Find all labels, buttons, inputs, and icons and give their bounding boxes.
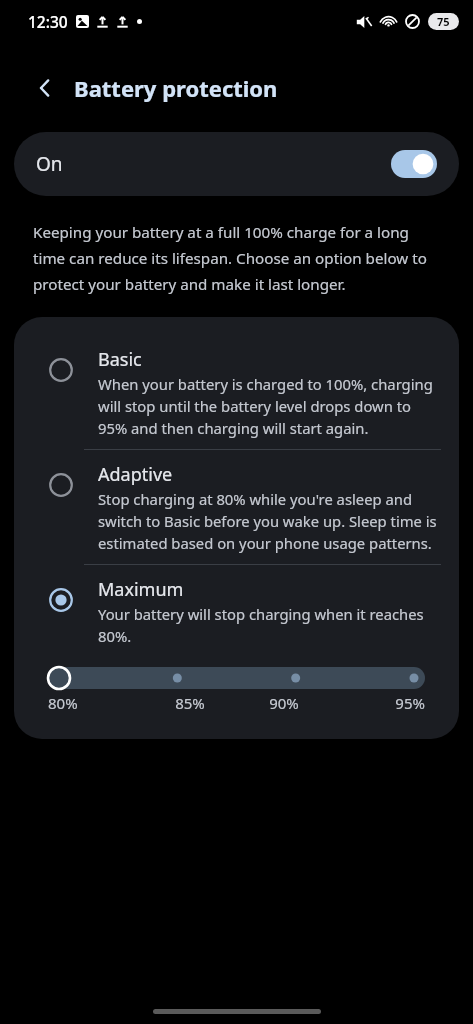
- staticText: 75: [437, 14, 450, 29]
- staticText: 85%: [143, 693, 237, 713]
- staticText: When your battery is charged to 100%, ch…: [98, 374, 441, 439]
- button[interactable]: Basic: [14, 317, 459, 449]
- button[interactable]: Maximum: [14, 565, 459, 651]
- staticText: Battery protection: [74, 73, 278, 103]
- staticText: Adaptive: [98, 462, 173, 487]
- staticText: 12:30: [28, 11, 68, 32]
- staticText: 80%: [48, 693, 143, 713]
- staticText: Keeping your battery at a full 100% char…: [33, 222, 440, 295]
- staticText: Basic: [98, 347, 142, 372]
- button[interactable]: Charge limit slider: [48, 665, 425, 691]
- staticText: Your battery will stop charging when it …: [98, 604, 441, 647]
- staticText: On: [36, 151, 63, 177]
- button[interactable]: Adaptive: [14, 450, 459, 564]
- staticText: Stop charging at 80% while you're asleep…: [98, 489, 441, 554]
- staticText: 95%: [331, 693, 425, 713]
- button[interactable]: On: [14, 132, 459, 196]
- button[interactable]: Back: [26, 69, 64, 107]
- staticText: 90%: [237, 693, 331, 713]
- staticText: Maximum: [98, 577, 184, 602]
